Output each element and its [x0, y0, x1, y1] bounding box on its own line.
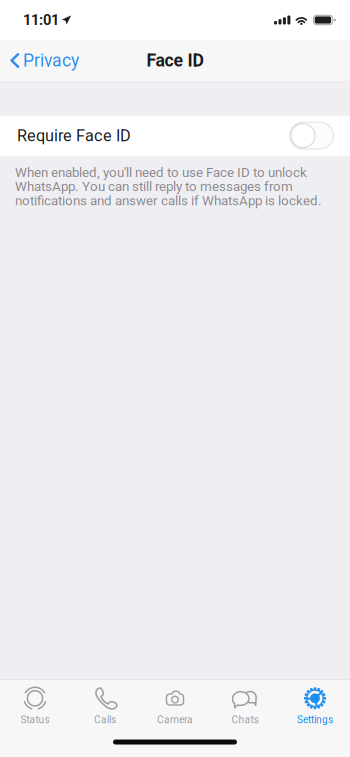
staticText: Chats — [231, 714, 258, 726]
button[interactable]: Privacy — [0, 40, 91, 81]
button[interactable]: Require Face ID — [0, 116, 350, 156]
staticText: Require Face ID — [17, 126, 131, 145]
staticText: 11:01 — [23, 11, 59, 29]
staticText: When enabled, you'll need to use Face ID… — [15, 165, 322, 208]
staticText: Calls — [94, 714, 116, 726]
staticText: Face ID — [146, 50, 203, 71]
button[interactable]: Settings — [280, 680, 350, 727]
button[interactable]: Calls — [70, 680, 140, 727]
button[interactable]: Camera — [140, 680, 210, 727]
staticText: Settings — [297, 714, 333, 726]
staticText: Privacy — [23, 50, 79, 71]
staticText: Camera — [157, 714, 193, 726]
button[interactable]: Chats — [210, 680, 280, 727]
staticText: Status — [20, 714, 49, 726]
button[interactable]: Status — [0, 680, 70, 727]
